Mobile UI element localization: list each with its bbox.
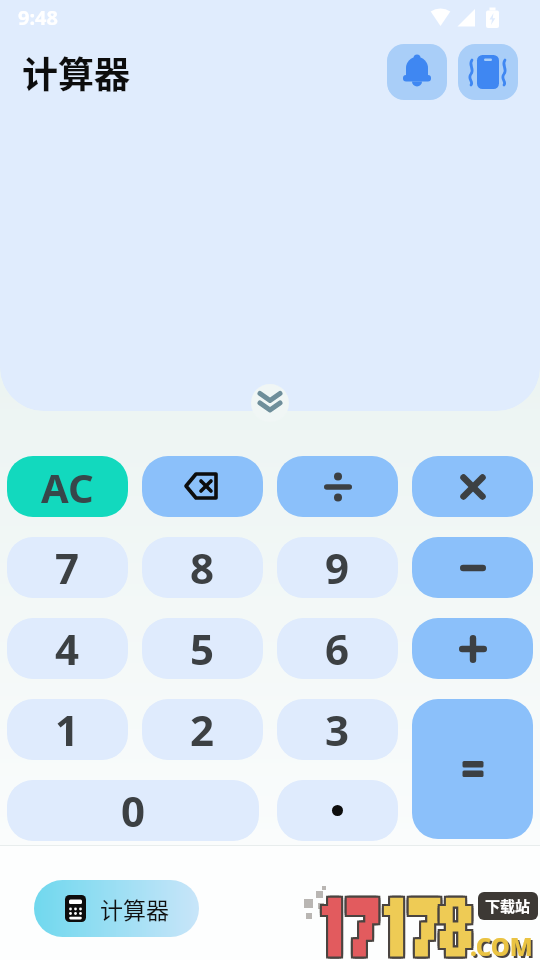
button[interactable]: 1 bbox=[7, 699, 128, 760]
staticText: 计算器 bbox=[100, 892, 169, 925]
button[interactable] bbox=[277, 780, 398, 841]
button[interactable]: 9 bbox=[277, 537, 398, 598]
staticText: .COM bbox=[470, 930, 533, 960]
staticText: 4 bbox=[55, 620, 80, 677]
button[interactable] bbox=[458, 44, 518, 100]
staticText: 3 bbox=[325, 701, 350, 758]
button[interactable] bbox=[277, 456, 398, 517]
staticText: 1 bbox=[55, 701, 80, 758]
staticText: 9:48 bbox=[18, 4, 58, 31]
button[interactable]: 2 bbox=[142, 699, 263, 760]
staticText: 下载站 bbox=[485, 895, 531, 917]
button[interactable] bbox=[142, 456, 263, 517]
button[interactable]: 6 bbox=[277, 618, 398, 679]
button[interactable]: AC bbox=[7, 456, 128, 517]
button[interactable]: 8 bbox=[142, 537, 263, 598]
button[interactable]: 0 bbox=[7, 780, 259, 841]
staticText: 2 bbox=[190, 701, 215, 758]
button[interactable]: 5 bbox=[142, 618, 263, 679]
button[interactable] bbox=[412, 699, 533, 839]
button[interactable] bbox=[412, 618, 533, 679]
button[interactable] bbox=[251, 384, 289, 422]
button[interactable]: 计算器 bbox=[34, 880, 199, 937]
staticText: AC bbox=[41, 460, 94, 514]
button[interactable] bbox=[387, 44, 447, 100]
staticText: 9 bbox=[325, 539, 350, 596]
button[interactable] bbox=[412, 537, 533, 598]
staticText: 7 bbox=[55, 539, 80, 596]
staticText: 6 bbox=[325, 620, 350, 677]
button[interactable]: 4 bbox=[7, 618, 128, 679]
staticText: 5 bbox=[190, 620, 215, 677]
staticText: 0 bbox=[121, 782, 146, 839]
button[interactable] bbox=[412, 456, 533, 517]
button[interactable]: 3 bbox=[277, 699, 398, 760]
staticText: 8 bbox=[190, 539, 215, 596]
staticText: 计算器 bbox=[22, 46, 131, 98]
button[interactable]: 7 bbox=[7, 537, 128, 598]
